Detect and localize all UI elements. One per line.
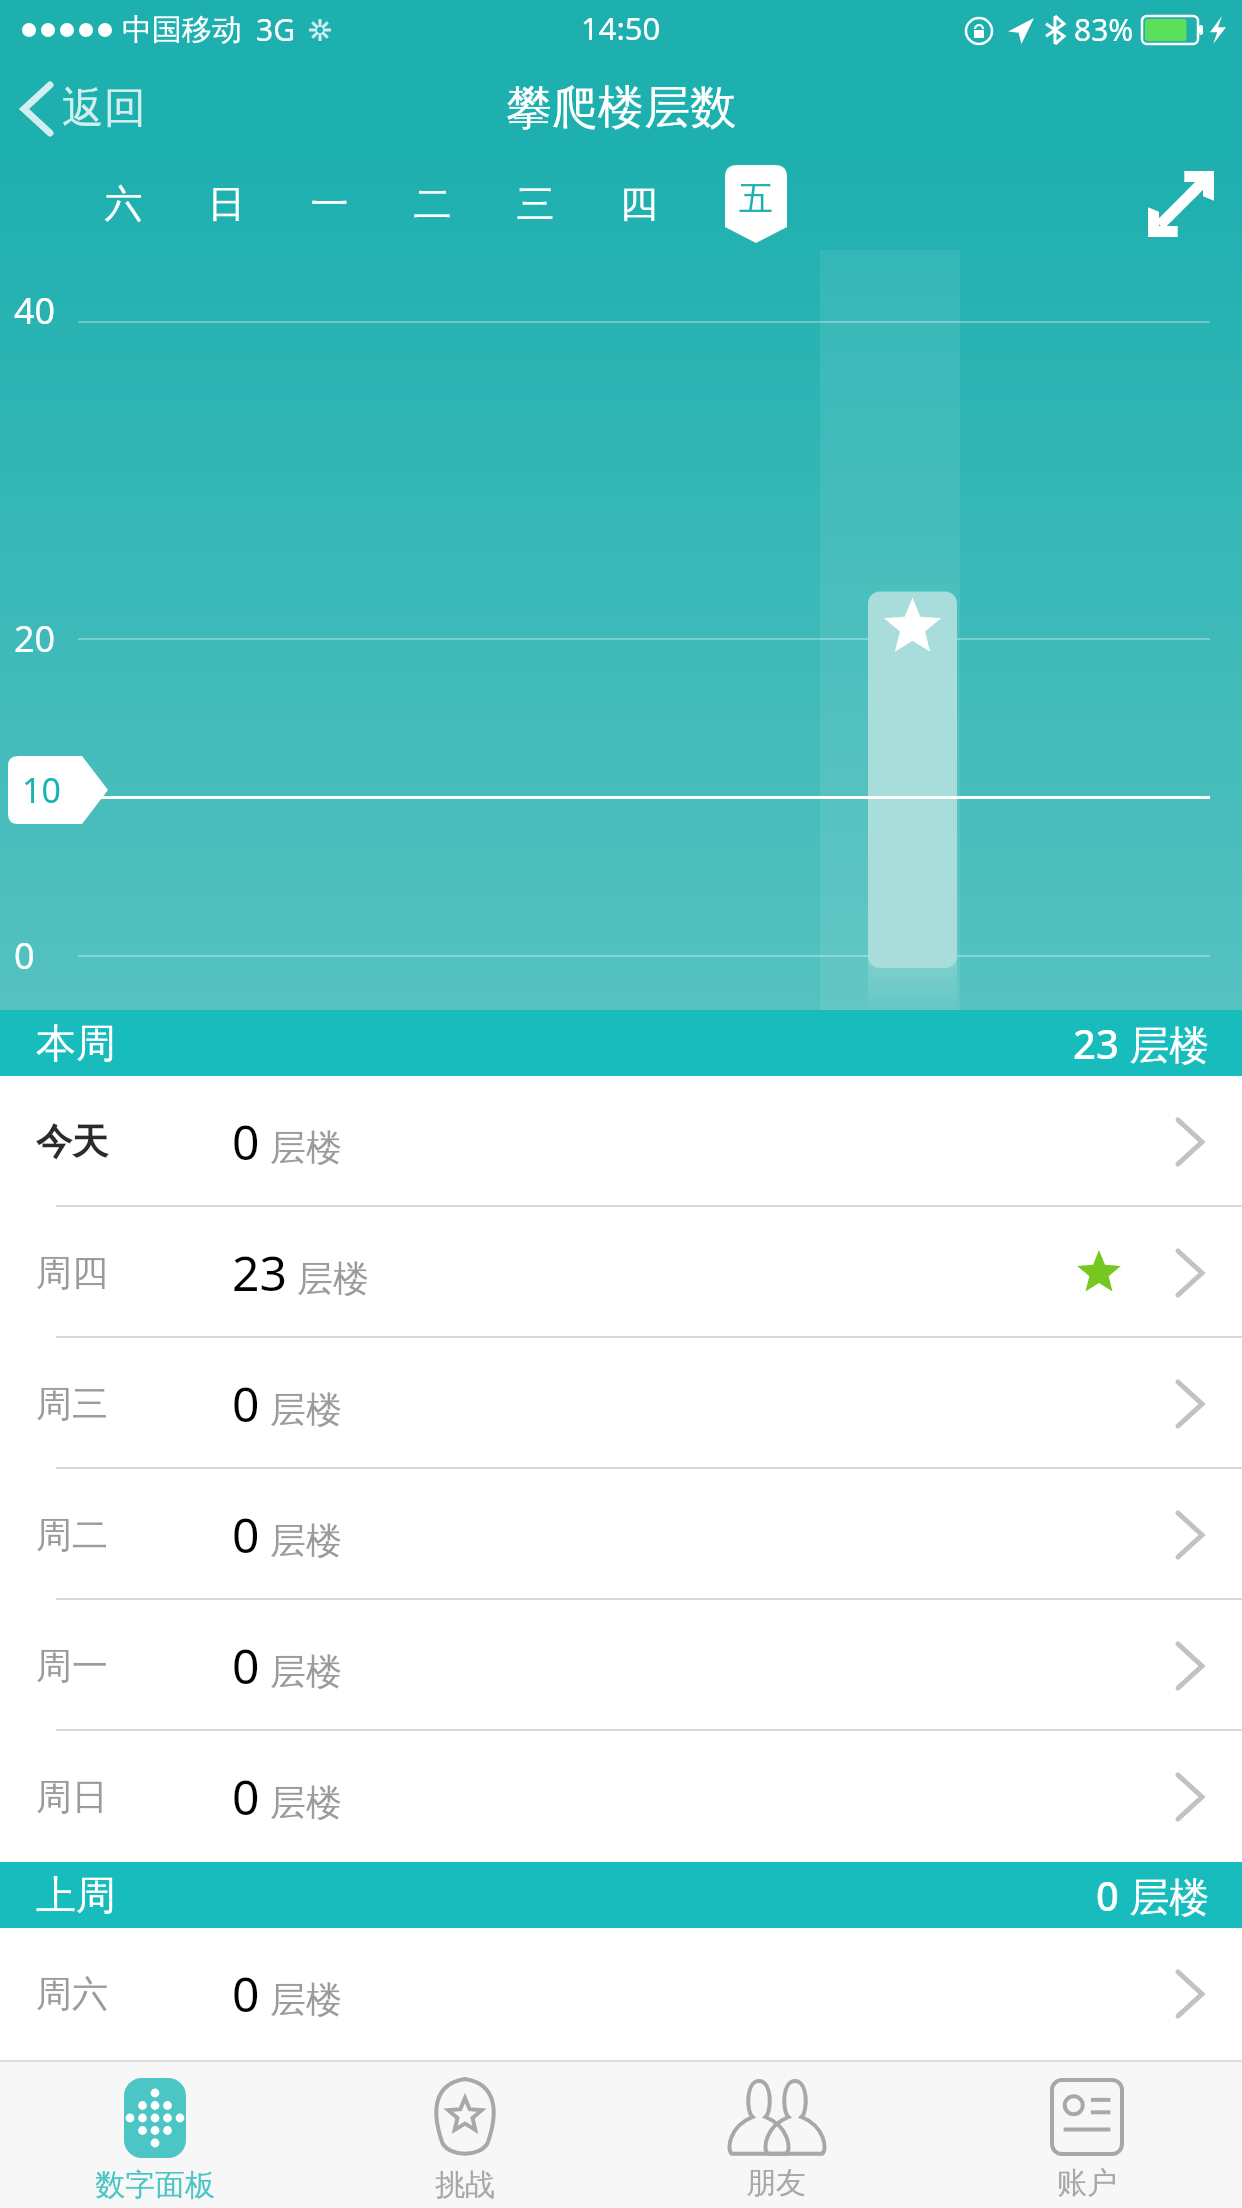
button[interactable]: 周三 [0, 1338, 1242, 1469]
staticText: 层楼 [270, 1780, 342, 1825]
button[interactable]: 返回 [0, 72, 170, 145]
staticText: 10 [22, 767, 61, 813]
staticText: 周一 [36, 1643, 108, 1688]
staticText: 层楼 [270, 1387, 342, 1432]
staticText: 挑战 [435, 2166, 495, 2204]
staticText: 返回 [62, 82, 146, 135]
staticText: 层楼 [270, 1518, 342, 1563]
staticText: 23 层楼 [1073, 1016, 1210, 1071]
staticText: 14:50 [581, 7, 661, 49]
staticText: 0 [232, 1764, 260, 1829]
staticText: 周四 [36, 1250, 108, 1295]
button[interactable]: 三 [484, 180, 587, 228]
staticText: 今天 [36, 1119, 108, 1164]
staticText: 周二 [36, 1512, 108, 1557]
staticText: 中国移动 [122, 11, 242, 49]
staticText: 周六 [36, 1971, 108, 2016]
staticText: 朋友 [746, 2164, 806, 2202]
staticText: 五 [739, 177, 773, 220]
button[interactable]: Expand [1148, 171, 1214, 237]
staticText: 层楼 [270, 1977, 342, 2022]
button[interactable]: 挑战 [310, 2062, 620, 2208]
staticText: 本周 [36, 1018, 116, 1068]
button[interactable]: 周一 [0, 1600, 1242, 1731]
staticText: 20 [14, 614, 56, 663]
staticText: 周三 [36, 1381, 108, 1426]
staticText: 周日 [36, 1774, 108, 1819]
staticText: 0 [232, 1961, 260, 2026]
button[interactable]: 朋友 [620, 2062, 931, 2208]
staticText: 层楼 [270, 1125, 342, 1170]
staticText: 0 [232, 1502, 260, 1567]
staticText: 层楼 [297, 1256, 369, 1301]
staticText: 账户 [1057, 2164, 1117, 2202]
button[interactable]: 五 [725, 165, 787, 243]
button[interactable]: 周四 [0, 1207, 1242, 1338]
button[interactable]: 账户 [931, 2062, 1242, 2208]
button[interactable]: 一 [278, 180, 381, 228]
button[interactable]: 二 [381, 180, 484, 228]
staticText: 上周 [36, 1870, 116, 1920]
staticText: 0 [14, 931, 35, 980]
button[interactable]: 周二 [0, 1469, 1242, 1600]
button[interactable]: 六 [72, 180, 175, 228]
staticText: 0 [232, 1109, 260, 1174]
button[interactable]: 本周 [0, 1010, 1242, 1076]
button[interactable]: 周六 [0, 1928, 1242, 2059]
button[interactable]: 日 [175, 180, 278, 228]
staticText: 83% [1074, 9, 1134, 50]
button[interactable]: 四 [587, 180, 690, 228]
staticText: 40 [14, 286, 56, 335]
button[interactable]: 周日 [0, 1731, 1242, 1862]
button[interactable]: 今天 [0, 1076, 1242, 1207]
staticText: 23 [232, 1240, 287, 1305]
staticText: 0 [232, 1371, 260, 1436]
button[interactable]: 上周 [0, 1862, 1242, 1928]
staticText: 0 层楼 [1096, 1868, 1210, 1923]
button[interactable]: 数字面板 [0, 2062, 310, 2208]
staticText: 层楼 [270, 1649, 342, 1694]
staticText: 0 [232, 1633, 260, 1698]
staticText: 攀爬楼层数 [506, 79, 736, 137]
staticText: 3G [256, 9, 295, 50]
staticText: 数字面板 [95, 2166, 215, 2204]
